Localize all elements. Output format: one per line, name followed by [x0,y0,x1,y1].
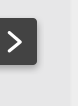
button[interactable]: Next [0,0,78,106]
